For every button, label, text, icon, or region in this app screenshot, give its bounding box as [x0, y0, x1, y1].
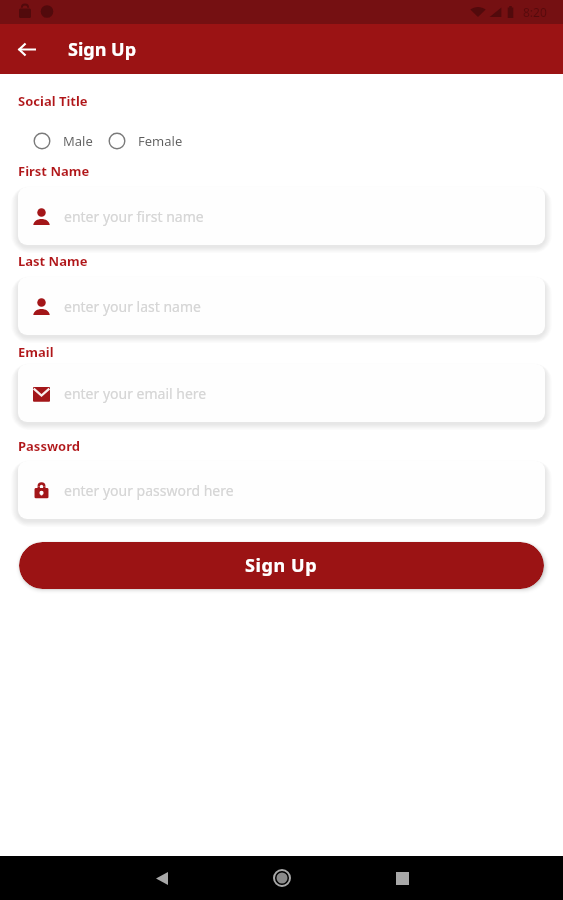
button[interactable]: enter your password here [18, 461, 545, 519]
staticText: enter your email here [64, 384, 207, 403]
staticText: First Name [18, 162, 90, 180]
staticText: enter your first name [64, 207, 204, 226]
staticText: Sign Up [68, 37, 137, 62]
button[interactable]: Male [33, 132, 93, 150]
button[interactable]: Recent apps [380, 856, 424, 900]
staticText: Sign Up [245, 553, 318, 578]
staticText: enter your last name [64, 297, 201, 316]
button[interactable]: Back [9, 31, 45, 67]
staticText: 8:20 [523, 4, 547, 20]
button[interactable]: enter your email here [18, 364, 545, 422]
staticText: Female [138, 132, 183, 150]
button[interactable]: enter your first name [18, 187, 545, 245]
button[interactable]: Back [140, 856, 184, 900]
staticText: Last Name [18, 252, 88, 270]
button[interactable]: Home [260, 856, 304, 900]
button[interactable]: enter your last name [18, 277, 545, 335]
staticText: Password [18, 437, 80, 455]
staticText: Male [63, 132, 93, 150]
staticText: Social Title [18, 92, 88, 110]
staticText: Email [18, 343, 54, 361]
button[interactable]: Sign Up [19, 542, 544, 589]
staticText: enter your password here [64, 481, 234, 500]
button[interactable]: Female [108, 132, 183, 150]
